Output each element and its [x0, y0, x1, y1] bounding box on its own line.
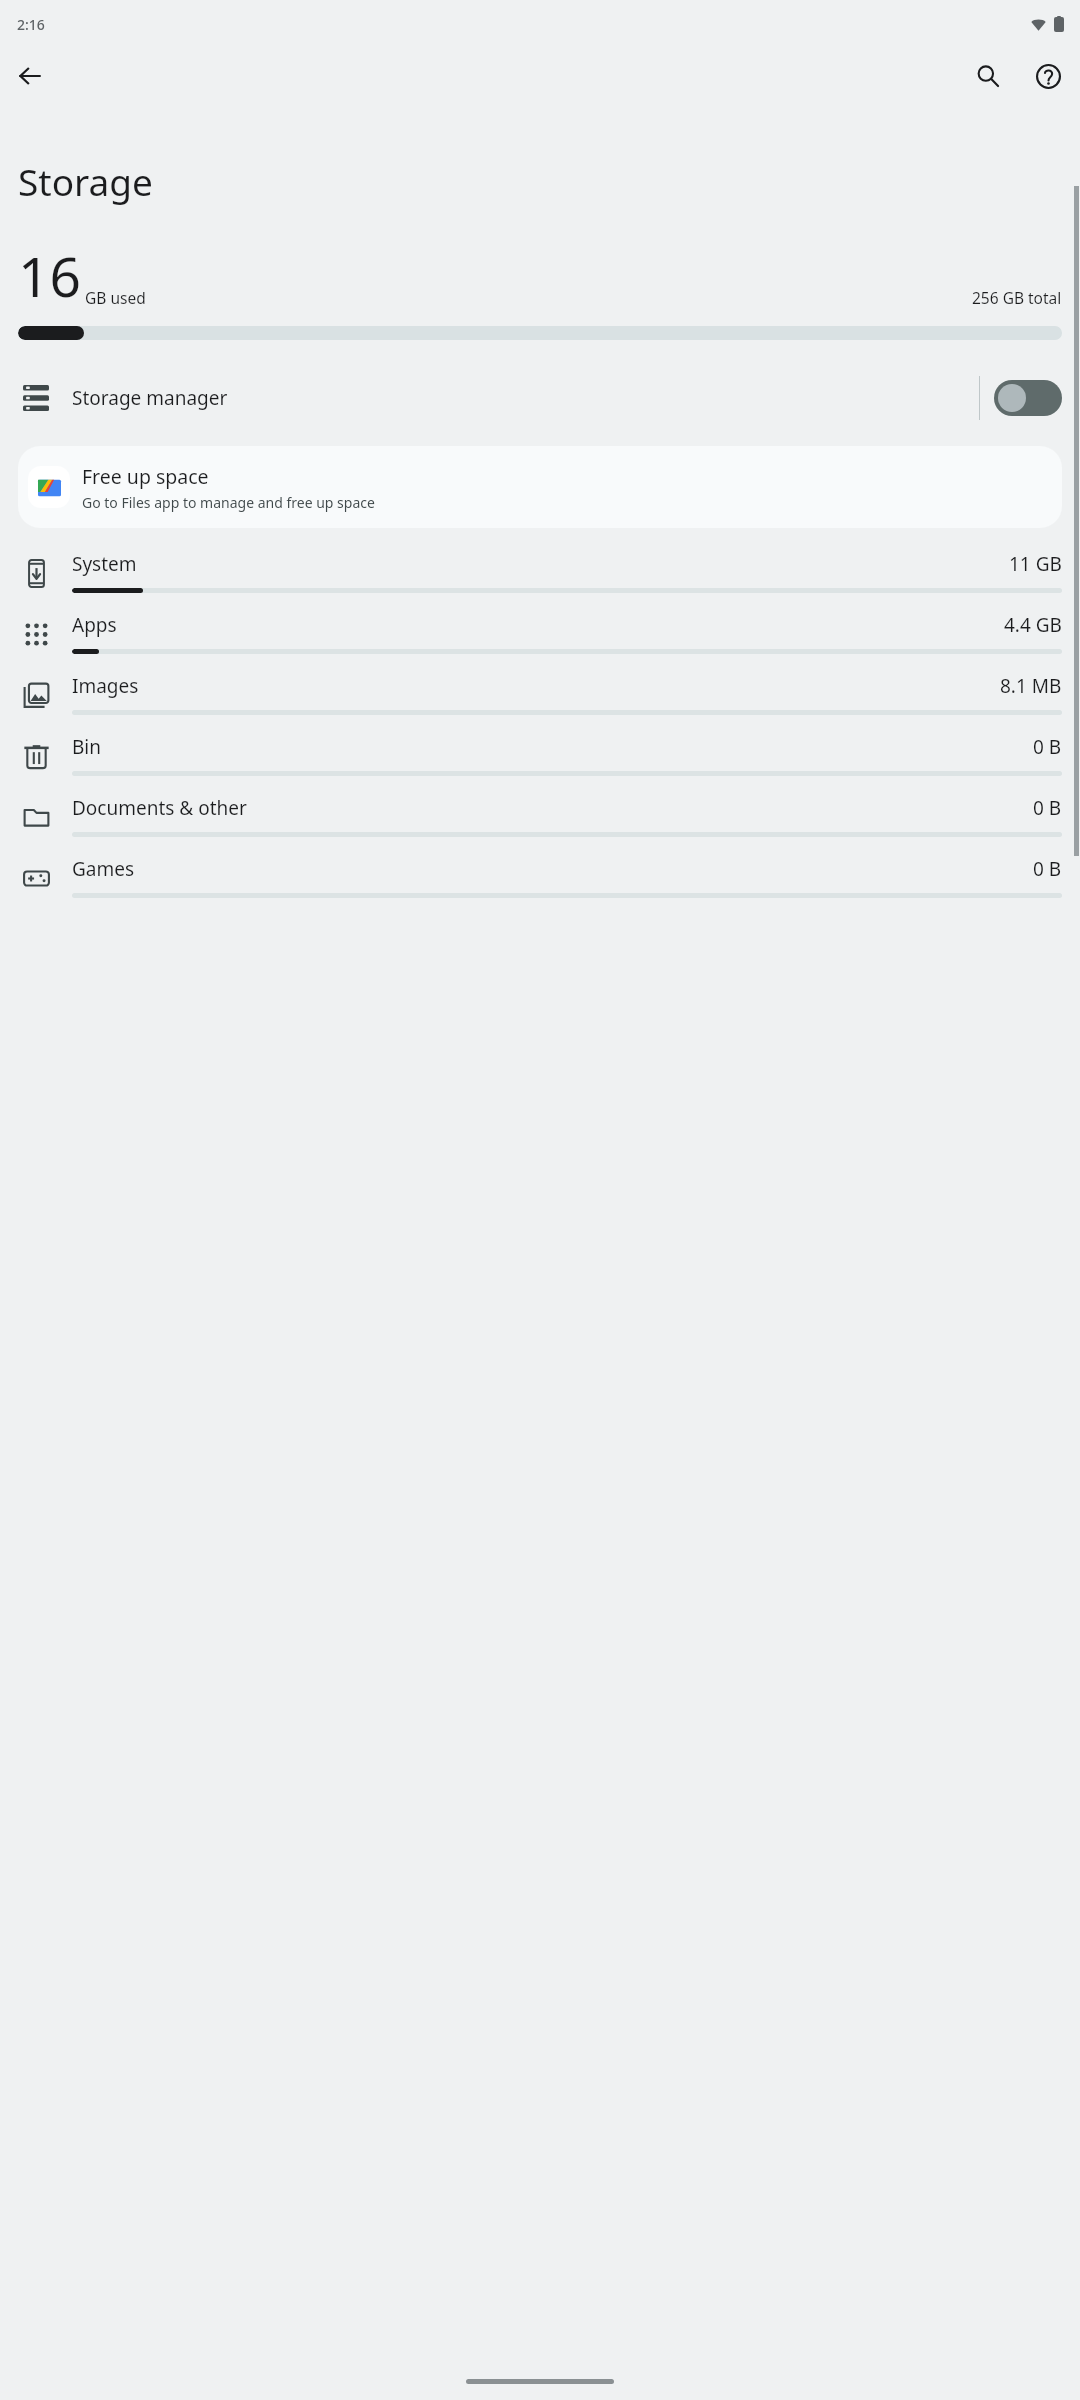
staticText: Apps: [72, 612, 117, 638]
button[interactable]: Search: [964, 52, 1012, 100]
button[interactable]: Storage manager: [0, 361, 1080, 435]
staticText: Games: [72, 856, 135, 882]
button[interactable]: System: [0, 543, 1080, 604]
button[interactable]: Free up space: [18, 446, 1062, 528]
button[interactable]: Documents & other: [0, 787, 1080, 848]
button[interactable]: Help: [1024, 52, 1072, 100]
button[interactable]: Storage manager toggle: [994, 380, 1062, 416]
button[interactable]: Games: [0, 848, 1080, 909]
staticText: 4.4 GB: [1004, 612, 1062, 638]
staticText: 2:16: [17, 15, 45, 34]
staticText: 8.1 MB: [1000, 673, 1062, 699]
button[interactable]: Back: [6, 52, 54, 100]
staticText: Documents & other: [72, 795, 247, 821]
staticText: Free up space: [82, 463, 209, 490]
staticText: 0 B: [1033, 734, 1062, 760]
staticText: 256 GB total: [972, 287, 1062, 308]
button[interactable]: Images: [0, 665, 1080, 726]
staticText: Images: [72, 673, 139, 699]
staticText: Storage: [18, 156, 153, 206]
staticText: 0 B: [1033, 856, 1062, 882]
staticText: GB used: [85, 287, 146, 308]
staticText: Bin: [72, 734, 101, 760]
staticText: 11 GB: [1009, 551, 1062, 577]
staticText: Storage manager: [72, 385, 228, 411]
button[interactable]: Bin: [0, 726, 1080, 787]
staticText: 16: [18, 238, 81, 313]
staticText: Go to Files app to manage and free up sp…: [82, 493, 375, 512]
staticText: System: [72, 551, 137, 577]
staticText: 0 B: [1033, 795, 1062, 821]
button[interactable]: Apps: [0, 604, 1080, 665]
